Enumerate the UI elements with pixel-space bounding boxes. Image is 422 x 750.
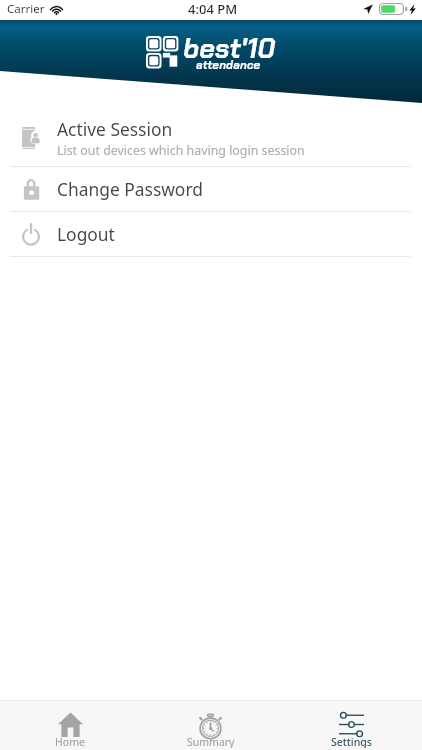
button[interactable]: Logout <box>0 212 422 256</box>
staticText: List out devices which having login sess… <box>57 142 305 159</box>
staticText: Carrier <box>7 1 45 17</box>
staticText: Change Password <box>57 177 203 201</box>
staticText: Settings <box>331 735 372 748</box>
staticText: attendance <box>196 58 261 73</box>
button[interactable]: Summary <box>140 701 281 750</box>
staticText: 4:04 PM <box>188 0 238 18</box>
button[interactable]: Change Password <box>0 167 422 211</box>
button[interactable]: Home <box>0 701 140 750</box>
staticText: Logout <box>57 222 115 246</box>
button[interactable]: Settings <box>281 701 422 750</box>
staticText: Active Session <box>57 117 173 141</box>
staticText: best'10 <box>183 31 276 66</box>
button[interactable]: Active Session <box>0 106 422 166</box>
staticText: Summary <box>187 735 235 748</box>
staticText: Home <box>55 735 85 748</box>
